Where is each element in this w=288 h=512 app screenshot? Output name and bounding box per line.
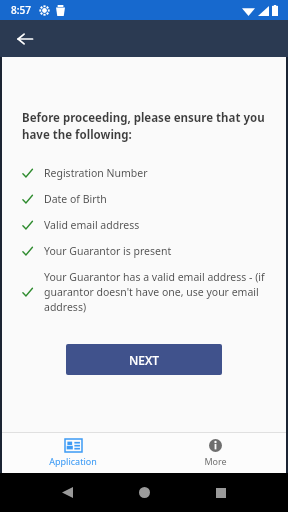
staticText: Registration Number xyxy=(44,166,148,180)
button[interactable]: More xyxy=(144,433,286,473)
staticText: Application xyxy=(49,455,97,467)
staticText: More xyxy=(204,455,227,467)
button[interactable]: NEXT xyxy=(66,344,222,375)
button[interactable]: Application xyxy=(2,433,144,473)
staticText: Your Guarantor has a valid email address… xyxy=(44,270,266,314)
staticText: Date of Birth xyxy=(44,192,107,206)
staticText: NEXT xyxy=(129,352,160,368)
staticText: Your Guarantor is present xyxy=(44,244,172,258)
staticText: Valid email address xyxy=(44,218,140,232)
staticText: Before proceeding, please ensure that yo… xyxy=(22,110,266,143)
button[interactable]: Back xyxy=(10,24,40,54)
staticText: 8:57 xyxy=(11,3,31,17)
